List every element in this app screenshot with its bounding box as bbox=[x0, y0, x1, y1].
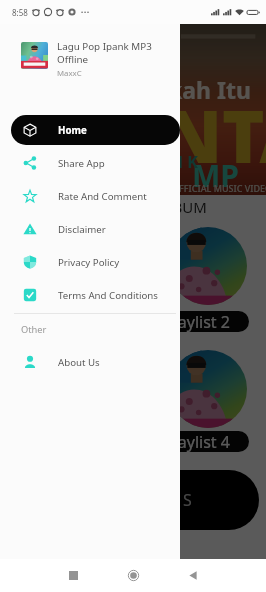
button[interactable]: About Us bbox=[11, 347, 180, 377]
staticText: 8:58 bbox=[12, 7, 28, 18]
button[interactable]: Privacy Policy bbox=[11, 247, 180, 277]
staticText: kah Itu bbox=[168, 74, 251, 105]
button[interactable]: Rate And Comment bbox=[11, 181, 180, 211]
staticText: S bbox=[183, 489, 192, 511]
staticText: Playlist 4 bbox=[164, 431, 230, 452]
button[interactable]: Recents bbox=[59, 561, 87, 589]
staticText: NTA bbox=[162, 86, 266, 184]
button[interactable]: Home bbox=[11, 115, 180, 145]
button[interactable]: Playlist 4 bbox=[140, 431, 249, 452]
staticText: Lagu Pop Ipank MP3 Offline bbox=[57, 40, 152, 66]
button[interactable]: Back bbox=[179, 561, 207, 589]
staticText: N K bbox=[170, 151, 198, 173]
staticText: Disclaimer bbox=[58, 223, 106, 236]
staticText: Home bbox=[58, 124, 87, 137]
staticText: About Us bbox=[58, 356, 100, 369]
staticText: Privacy Policy bbox=[58, 256, 120, 269]
staticText: Rate And Comment bbox=[58, 190, 147, 203]
button[interactable]: Disclaimer bbox=[11, 214, 180, 244]
staticText: MaxxC bbox=[57, 68, 82, 79]
button[interactable]: Share App bbox=[11, 148, 180, 178]
staticText: MP bbox=[192, 155, 239, 196]
staticText: Share App bbox=[58, 157, 105, 170]
staticText: ALBUM bbox=[155, 197, 207, 217]
staticText: Terms And Conditions bbox=[58, 289, 158, 302]
button[interactable]: Playlist 2 bbox=[140, 311, 249, 332]
button[interactable]: Home bbox=[119, 561, 147, 589]
button[interactable]: Terms And Conditions bbox=[11, 280, 180, 310]
staticText: OFFICIAL MUSIC VIDEO bbox=[172, 182, 266, 194]
staticText: Playlist 2 bbox=[164, 311, 230, 332]
staticText: Other bbox=[21, 323, 47, 336]
